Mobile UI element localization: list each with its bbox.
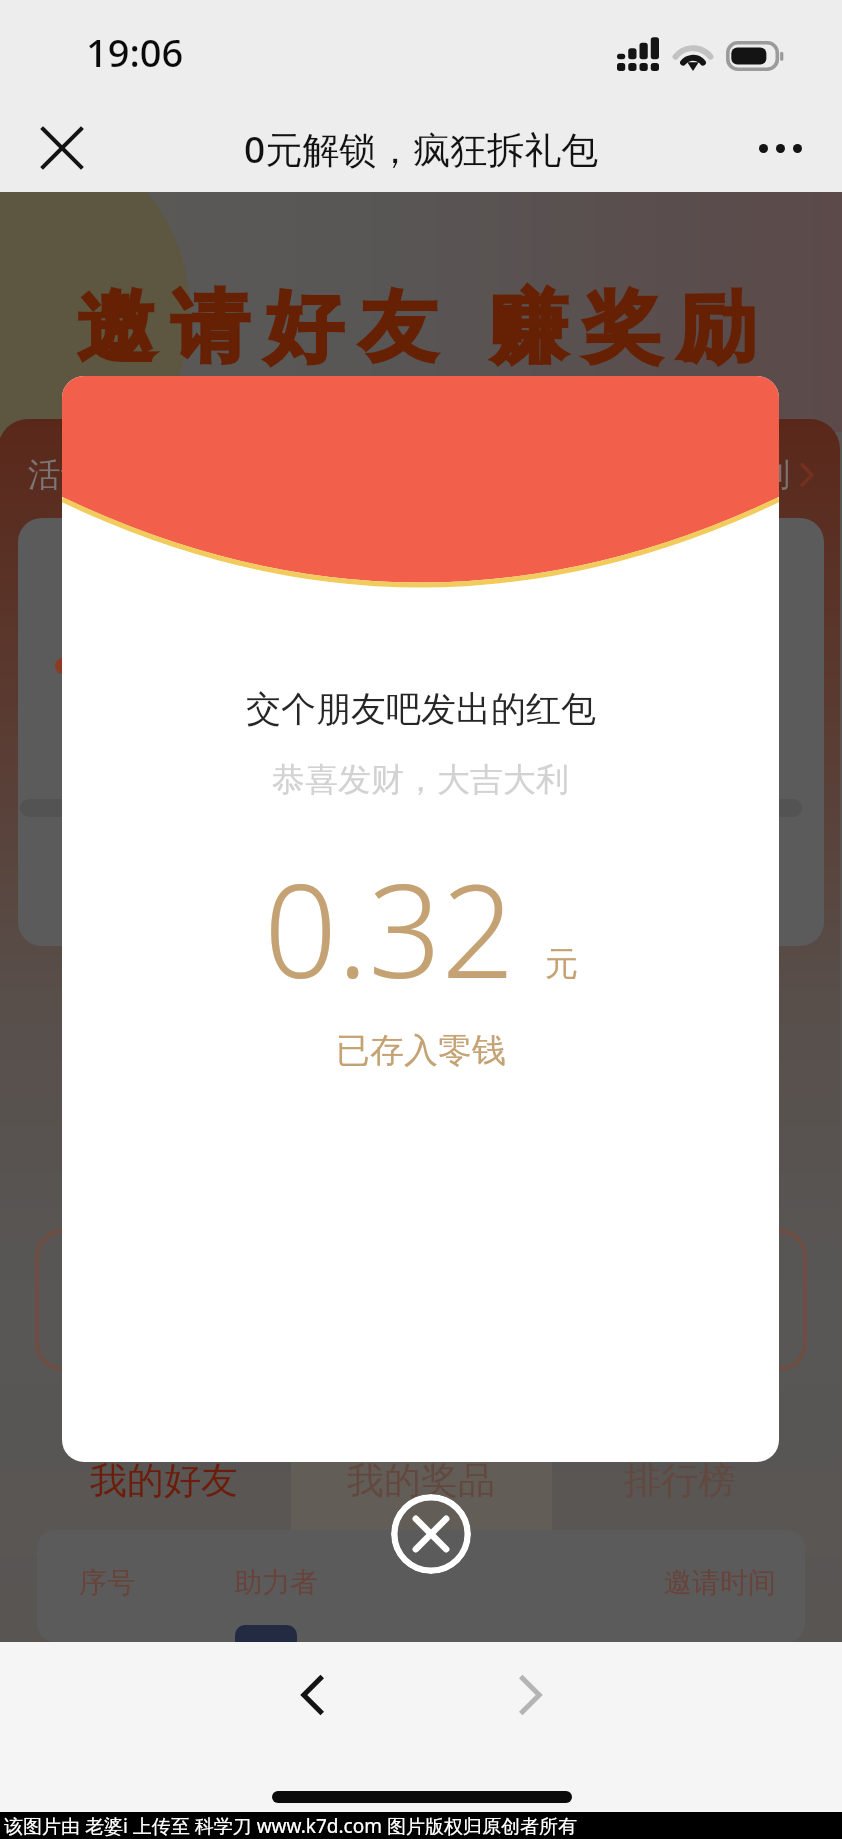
staticText: 活动规则 bbox=[658, 454, 790, 496]
button[interactable]: 我的好友 bbox=[34, 1450, 294, 1510]
staticText: 我的好友 bbox=[90, 1457, 238, 1504]
button[interactable]: 我的奖品 bbox=[291, 1450, 551, 1510]
button[interactable]: Forward bbox=[485, 1650, 575, 1740]
button[interactable]: 排行榜 bbox=[549, 1450, 809, 1510]
staticText: 0元解锁，疯狂拆礼包 bbox=[244, 123, 599, 174]
staticText: 序号 bbox=[79, 1565, 135, 1600]
staticText: 排行榜 bbox=[624, 1457, 735, 1504]
staticText: 已存入零钱 bbox=[336, 1029, 506, 1072]
staticText: 助力者 bbox=[234, 1565, 318, 1600]
staticText: 0.32 bbox=[264, 841, 515, 1015]
staticText: 恭喜发财，大吉大利 bbox=[272, 759, 569, 801]
staticText: 邀请好友 赚奖励 bbox=[77, 271, 772, 378]
staticText: 活动规则 bbox=[28, 454, 160, 496]
button[interactable]: Close dialog bbox=[391, 1494, 471, 1574]
button[interactable]: More options bbox=[740, 108, 820, 188]
staticText: 我的奖品 bbox=[347, 1457, 495, 1504]
staticText: 元 bbox=[545, 943, 578, 985]
staticText: 该图片由 老婆i 上传至 科学刀 www.k7d.com 图片版权归原创者所有 bbox=[4, 1813, 577, 1839]
button[interactable]: Back bbox=[268, 1650, 358, 1740]
staticText: 交个朋友吧发出的红包 bbox=[246, 687, 596, 731]
staticText: 邀请时间 bbox=[664, 1565, 776, 1600]
staticText: 19:06 bbox=[86, 26, 184, 78]
button[interactable]: Close bbox=[22, 108, 102, 188]
